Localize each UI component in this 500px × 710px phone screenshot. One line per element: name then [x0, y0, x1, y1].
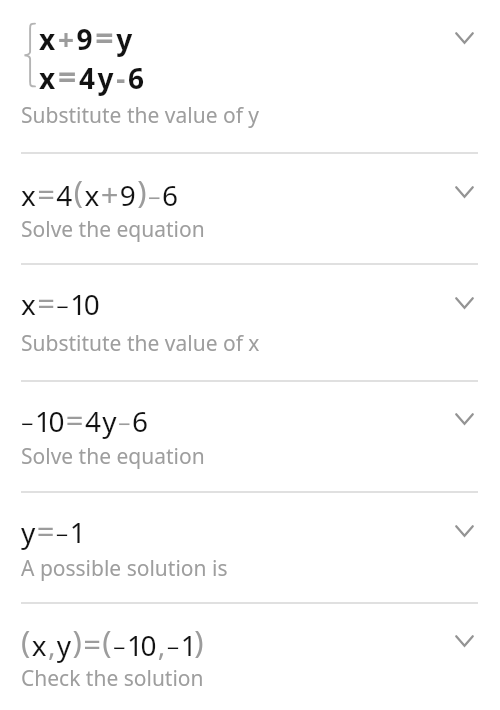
button[interactable] — [0, 0, 500, 151]
staticText: Check the solution — [21, 664, 204, 693]
staticText: A possible solution is — [21, 554, 228, 583]
staticText: x=4(x+9)−6 — [21, 170, 180, 215]
button[interactable]: Expand step — [441, 15, 487, 61]
staticText: y=−1 — [21, 510, 84, 552]
staticText: x=−10 — [21, 282, 102, 324]
staticText: Solve the equation — [21, 215, 205, 244]
button[interactable] — [0, 603, 500, 710]
button[interactable]: Expand step — [441, 508, 487, 554]
staticText: Substitute the value of y — [21, 101, 260, 130]
staticText: x=4y-6 — [39, 55, 147, 99]
staticText: Solve the equation — [21, 442, 205, 471]
button[interactable] — [0, 492, 500, 602]
button[interactable]: Expand step — [441, 280, 487, 326]
staticText: (x,y)=(−10,−1) — [21, 620, 205, 665]
button[interactable]: Expand step — [441, 396, 487, 442]
button[interactable]: Expand step — [441, 169, 487, 215]
staticText: −10=4y−6 — [21, 399, 150, 441]
button[interactable] — [0, 265, 500, 380]
button[interactable]: Expand step — [441, 618, 487, 664]
staticText: Substitute the value of x — [21, 329, 260, 358]
button[interactable] — [0, 152, 500, 264]
staticText: x+9=y — [39, 16, 136, 60]
button[interactable] — [0, 381, 500, 491]
